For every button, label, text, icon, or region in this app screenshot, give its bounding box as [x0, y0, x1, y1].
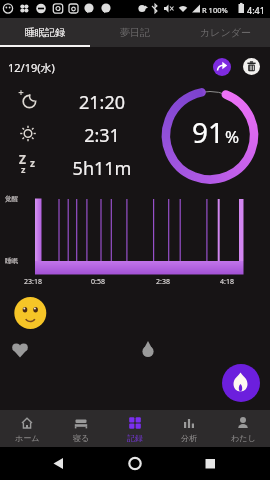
staticText: 寝る: [73, 433, 90, 443]
staticText: 4:41: [247, 4, 265, 16]
staticText: %: [225, 125, 240, 148]
button[interactable]: [0, 447, 90, 480]
staticText: 12/19(水): [8, 60, 55, 75]
staticText: 記録: [127, 433, 143, 443]
button[interactable]: [222, 364, 260, 402]
staticText: 0:58: [78, 277, 118, 287]
button[interactable]: [243, 58, 260, 75]
button[interactable]: [11, 342, 29, 360]
staticText: 睡眠記録: [25, 26, 65, 39]
staticText: R 100%: [202, 5, 228, 15]
staticText: 睡眠: [5, 257, 18, 265]
button[interactable]: [14, 297, 46, 329]
staticText: 覚醒: [5, 195, 18, 203]
staticText: Z: [19, 151, 26, 167]
button[interactable]: 夢日記: [90, 18, 180, 47]
staticText: 5h11m: [57, 156, 147, 181]
staticText: z: [30, 156, 35, 170]
button[interactable]: [213, 58, 231, 76]
staticText: 91: [192, 113, 225, 151]
button[interactable]: 記録: [108, 410, 162, 447]
staticText: 21:20: [57, 90, 147, 115]
button[interactable]: 睡眠記録: [0, 18, 90, 47]
staticText: 4:18: [207, 277, 247, 287]
staticText: カレンダー: [200, 26, 251, 39]
staticText: z: [21, 163, 26, 175]
staticText: 夢日記: [120, 26, 150, 39]
staticText: わたし: [231, 433, 256, 443]
staticText: 2:38: [143, 277, 183, 287]
button[interactable]: ホーム: [0, 410, 54, 447]
button[interactable]: 寝る: [54, 410, 108, 447]
button[interactable]: [180, 447, 270, 480]
staticText: 分析: [181, 433, 197, 443]
button[interactable]: わたし: [216, 410, 270, 447]
button[interactable]: カレンダー: [180, 18, 270, 47]
button[interactable]: [90, 447, 180, 480]
staticText: 2:31: [57, 123, 147, 148]
button[interactable]: 分析: [162, 410, 216, 447]
staticText: 23:18: [13, 277, 53, 287]
button[interactable]: [139, 340, 157, 358]
staticText: ホーム: [15, 433, 40, 443]
